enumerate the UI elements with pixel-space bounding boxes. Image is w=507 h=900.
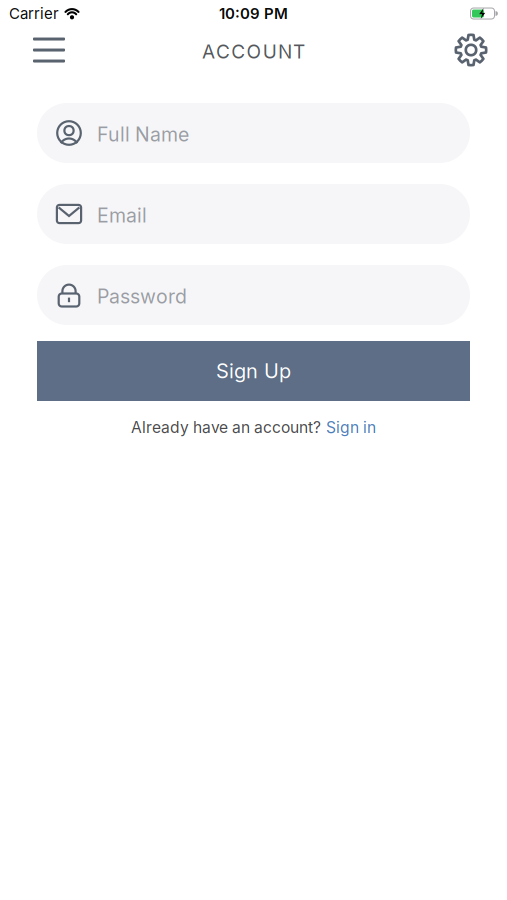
staticText: Email bbox=[97, 204, 147, 227]
staticText: U bbox=[263, 40, 277, 63]
button[interactable]: Menu bbox=[33, 37, 65, 62]
staticText: Full Name bbox=[97, 123, 189, 146]
staticText: Sign Up bbox=[216, 359, 291, 383]
staticText: C bbox=[231, 40, 245, 63]
staticText: 10:09 PM bbox=[219, 5, 288, 22]
staticText: C bbox=[216, 40, 230, 63]
staticText: T bbox=[293, 40, 305, 63]
button[interactable]: Sign in bbox=[326, 418, 376, 436]
button[interactable]: Email bbox=[37, 184, 470, 244]
staticText: Already have an account? bbox=[131, 418, 321, 436]
button[interactable]: Password bbox=[37, 265, 470, 325]
staticText: Carrier bbox=[9, 5, 59, 22]
button[interactable]: Settings bbox=[454, 33, 488, 67]
button[interactable]: Full Name bbox=[37, 103, 470, 163]
staticText: O bbox=[246, 40, 261, 63]
staticText: Password bbox=[97, 285, 187, 308]
staticText: N bbox=[278, 40, 292, 63]
staticText: A bbox=[202, 40, 215, 63]
button[interactable]: Sign Up bbox=[37, 341, 470, 401]
staticText: Sign in bbox=[326, 418, 376, 436]
